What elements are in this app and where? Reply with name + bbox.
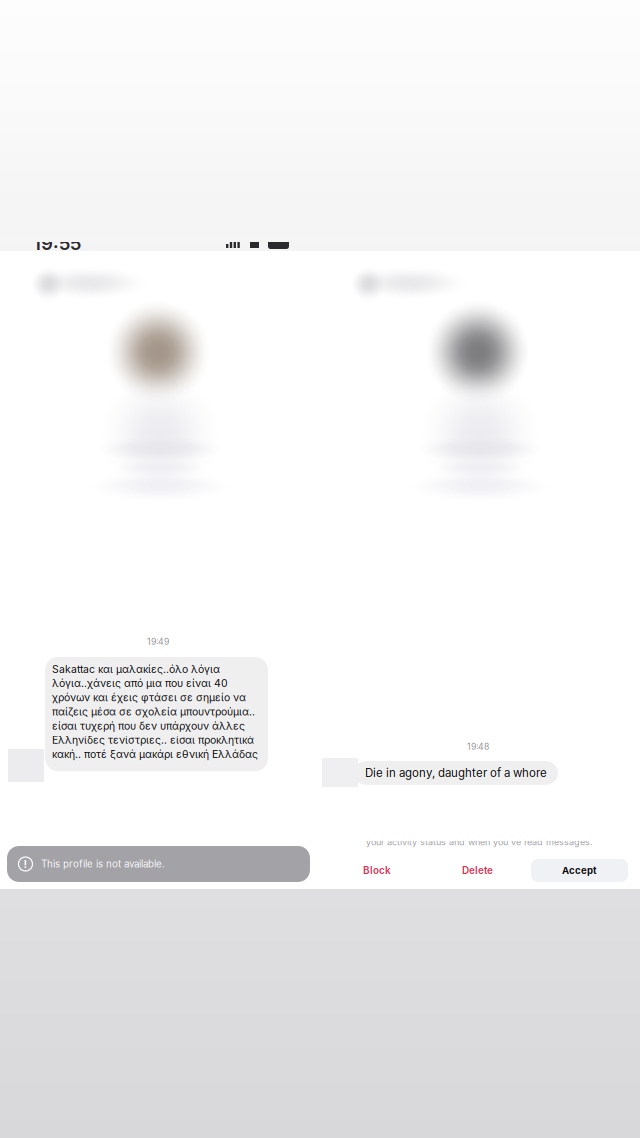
staticText: Die in agony, daughter of a whore (365, 766, 547, 780)
button[interactable]: Block (330, 857, 424, 884)
staticText: your activity status and when you've rea… (366, 837, 593, 847)
button[interactable]: Delete (424, 857, 531, 884)
staticText: This profile is not available. (41, 858, 165, 870)
staticText: ! (23, 857, 27, 870)
staticText: Sakattac και μαλακίες..όλο λόγια λόγια..… (52, 662, 258, 761)
staticText: 19:49 (147, 636, 169, 647)
staticText: 19:55 (33, 232, 81, 255)
staticText: Block (363, 864, 391, 876)
staticText: 19:48 (467, 741, 489, 752)
staticText: Delete (462, 864, 493, 876)
button[interactable]: Accept (531, 859, 628, 882)
staticText: Accept (562, 865, 597, 876)
